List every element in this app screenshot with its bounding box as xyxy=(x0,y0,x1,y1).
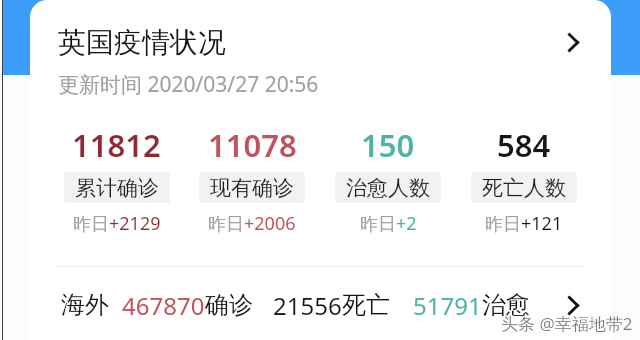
button[interactable]: 海外 xyxy=(30,276,611,334)
staticText: 51791 xyxy=(413,289,482,322)
staticText: 昨日+121 xyxy=(485,211,563,236)
staticText: 确诊 xyxy=(205,290,253,320)
staticText: 死亡 xyxy=(342,290,390,320)
staticText: 英国疫情状况 xyxy=(58,25,226,60)
staticText: 昨日+2129 xyxy=(73,211,161,236)
staticText: 死亡人数 xyxy=(482,175,566,201)
staticText: 11812 xyxy=(72,124,161,166)
staticText: 治愈 xyxy=(482,290,530,320)
button[interactable]: 英国疫情状况 xyxy=(30,10,611,74)
staticText: 头条 @幸福地带2 xyxy=(501,312,633,335)
staticText: 昨日+2006 xyxy=(208,211,296,236)
staticText: 现有确诊 xyxy=(210,175,294,201)
staticText: 21556 xyxy=(273,289,342,322)
staticText: 更新时间 2020/03/27 20:56 xyxy=(58,70,319,99)
staticText: 累计确诊 xyxy=(75,175,159,201)
staticText: 584 xyxy=(497,124,551,166)
staticText: 11078 xyxy=(208,124,297,166)
other: More details xyxy=(568,33,579,52)
staticText: 治愈人数 xyxy=(346,175,430,201)
staticText: 昨日+2 xyxy=(360,211,417,236)
staticText: 海外 xyxy=(61,290,109,320)
staticText: 467870 xyxy=(122,289,205,322)
other: Overseas details xyxy=(568,296,579,315)
staticText: 150 xyxy=(361,124,415,166)
